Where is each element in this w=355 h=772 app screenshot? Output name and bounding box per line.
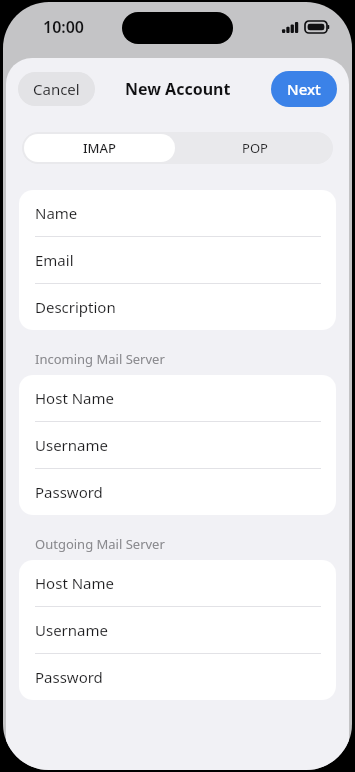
button[interactable]: Password [19,654,336,700]
staticText: POP [242,139,268,157]
staticText: Description [35,297,116,317]
button[interactable]: Password [19,469,336,515]
button[interactable]: IMAP [24,134,175,162]
staticText: Host Name [35,573,114,593]
button[interactable]: Next [271,71,337,107]
button[interactable]: Email [19,237,336,283]
staticText: Incoming Mail Server [35,350,165,368]
staticText: Password [35,482,103,502]
staticText: Cancel [33,79,80,99]
staticText: 10:00 [43,16,85,38]
button[interactable]: Host Name [19,375,336,421]
staticText: Outgoing Mail Server [35,535,165,553]
button[interactable]: Host Name [19,560,336,606]
button[interactable]: POP [177,132,333,164]
staticText: Password [35,667,103,687]
button[interactable]: Cancel [18,72,95,106]
button[interactable]: Username [19,422,336,468]
staticText: New Account [125,78,231,100]
staticText: Username [35,620,108,640]
staticText: Next [287,79,321,99]
staticText: Email [35,250,74,270]
staticText: Username [35,435,108,455]
button[interactable]: Name [19,190,336,236]
button[interactable]: Description [19,284,336,330]
button[interactable]: Username [19,607,336,653]
staticText: Host Name [35,388,114,408]
staticText: IMAP [83,139,116,157]
staticText: Name [35,203,78,223]
